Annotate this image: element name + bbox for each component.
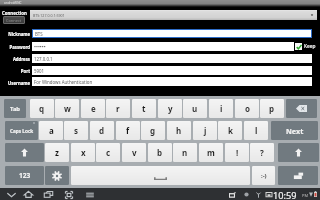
button[interactable]: Recents [40,188,57,200]
staticText: Username [0,80,30,86]
button[interactable]: v [122,143,146,162]
button[interactable]: c [96,143,120,162]
staticText: •••••• [34,43,46,50]
button[interactable]: •••••• [32,42,294,51]
staticText: l [255,125,258,136]
button[interactable]: Home [20,188,37,200]
button[interactable]: f [116,121,140,140]
staticText: androidVNC [4,1,22,5]
staticText: y [168,103,173,114]
staticText: Connect [6,18,22,23]
staticText: r [116,103,120,114]
button[interactable]: l [244,121,268,140]
staticText: g [150,125,156,136]
button[interactable]: Keep [295,42,316,51]
button[interactable]: Hide keyboard [3,188,20,200]
button[interactable]: i [209,99,233,118]
button[interactable]: Hide keyboard [278,166,318,185]
staticText: Password [0,44,30,50]
button[interactable]: Screenshot [228,188,237,200]
staticText: 5901 [34,68,45,74]
button[interactable]: x [71,143,95,162]
staticText: m [207,147,215,158]
staticText: f [126,125,130,136]
button[interactable]: Backspace [286,99,317,118]
button[interactable]: ? [250,143,274,162]
staticText: a [49,125,54,136]
staticText: :-) [261,172,267,180]
button[interactable]: a [39,121,63,140]
button[interactable]: m [199,143,223,162]
button[interactable]: z [45,143,69,162]
button[interactable]: ! [225,143,249,162]
staticText: 127.0.0.1 [34,56,53,62]
button[interactable]: :-) [252,166,275,185]
button[interactable]: BTS:127.0.0.1:5901 [30,10,317,20]
staticText: ? [260,147,264,158]
staticText: e [91,103,96,114]
staticText: d [99,125,105,136]
staticText: j [204,125,207,136]
button[interactable]: s [64,121,88,140]
staticText: ! [236,147,239,158]
staticText: q [39,103,45,114]
button[interactable]: Shift [278,143,319,162]
button[interactable]: u [183,99,207,118]
button[interactable]: j [193,121,217,140]
button[interactable]: k [218,121,242,140]
staticText: t [142,103,146,114]
staticText: Caps Lock [10,128,34,134]
button[interactable]: 5901 [32,66,312,75]
button[interactable]: d [90,121,114,140]
button[interactable]: Switch input method [60,188,77,200]
staticText: Nickname [0,31,30,37]
staticText: Keep [304,43,316,50]
button[interactable]: Next [271,121,318,140]
staticText: i [220,103,223,114]
button[interactable]: Menu [81,188,98,200]
button[interactable]: h [167,121,191,140]
staticText: w [64,103,71,114]
staticText: x [81,147,86,158]
staticText: s [74,125,79,136]
button[interactable]: o [235,99,259,118]
button[interactable]: 127.0.0.1 [32,54,312,63]
button[interactable]: Tab [4,99,26,118]
staticText: k [228,125,233,136]
button[interactable]: p [260,99,284,118]
button[interactable]: Connect [4,17,24,23]
staticText: v [132,147,137,158]
staticText: n [182,147,188,158]
button[interactable]: y [158,99,182,118]
staticText: u [192,103,198,114]
staticText: Address [0,56,30,62]
button[interactable]: For Windows Authentication [32,77,312,86]
staticText: z [55,147,59,158]
button[interactable]: e [81,99,105,118]
button[interactable]: w [55,99,79,118]
staticText: Port [0,68,30,74]
button[interactable]: Settings [45,166,69,185]
button[interactable]: g [141,121,165,140]
button[interactable]: Space [71,166,250,185]
staticText: 10:59 [273,189,297,200]
button[interactable]: q [30,99,54,118]
button[interactable]: BTS [33,30,311,37]
staticText: p [269,103,275,114]
staticText: h [176,125,182,136]
staticText: PM [302,193,309,198]
staticText: Connection [2,10,27,16]
staticText: 123 [19,171,31,180]
button[interactable]: Shift [5,143,44,162]
staticText: BTS [35,31,43,37]
staticText: BTS:127.0.0.1:5901 [33,13,65,18]
staticText: Next [286,126,304,136]
button[interactable]: Caps Lock [5,121,38,140]
staticText: c [106,147,111,158]
staticText: b [157,147,163,158]
button[interactable]: n [173,143,197,162]
button[interactable]: 123 [5,166,44,185]
button[interactable]: b [148,143,172,162]
button[interactable]: t [132,99,156,118]
button[interactable]: r [106,99,130,118]
